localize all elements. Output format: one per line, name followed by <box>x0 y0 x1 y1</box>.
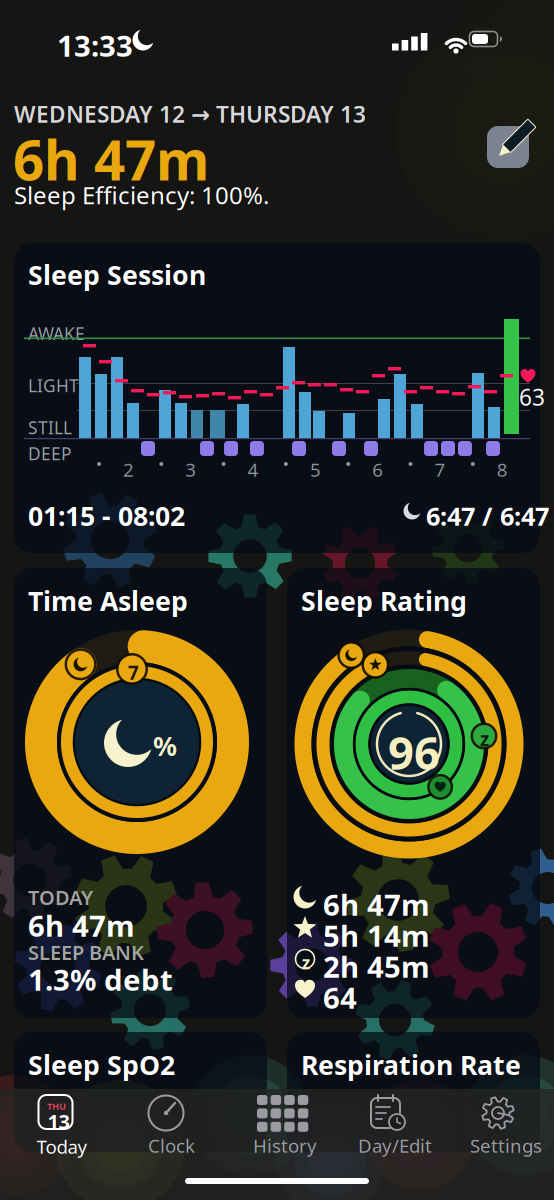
staticText: 6h 47m <box>28 906 135 945</box>
staticText: Clock <box>148 1133 195 1158</box>
staticText: DEEP <box>28 442 71 465</box>
staticText: 01:15 - 08:02 <box>28 498 185 533</box>
staticText: 5h 14m <box>323 916 430 955</box>
staticText: 4 <box>248 457 259 482</box>
staticText: 13:33 <box>57 26 133 65</box>
button[interactable]: Day/Edit <box>338 1092 438 1152</box>
staticText: 7 <box>128 660 139 685</box>
staticText: SLEEP BANK <box>28 939 144 966</box>
button[interactable]: Respiration Rate <box>287 1032 540 1152</box>
button[interactable]: Sleep Rating <box>287 568 540 1018</box>
button[interactable] <box>483 112 539 172</box>
staticText: 2h 45m <box>323 947 430 986</box>
button[interactable]: Sleep SpO2 <box>14 1032 267 1152</box>
button[interactable]: Sleep Session <box>14 243 540 553</box>
staticText: Today <box>36 1134 87 1159</box>
staticText: Sleep Efficiency: 100%. <box>14 179 269 211</box>
staticText: WEDNESDAY 12 → THURSDAY 13 <box>14 99 366 129</box>
button[interactable]: Settings <box>448 1092 548 1152</box>
staticText: 64 <box>323 978 357 1017</box>
button[interactable]: Clock <box>116 1092 216 1152</box>
staticText: 13 <box>47 1108 69 1135</box>
staticText: z <box>302 951 311 974</box>
staticText: Sleep SpO2 <box>28 1047 175 1082</box>
staticText: STILL <box>28 416 72 439</box>
staticText: 1.3% debt <box>28 960 173 999</box>
staticText: AWAKE <box>28 322 85 345</box>
staticText: 3 <box>185 457 196 482</box>
staticText: % <box>153 728 177 763</box>
staticText: 63 <box>519 382 545 412</box>
staticText: LIGHT <box>28 374 79 397</box>
staticText: 6 <box>372 457 383 482</box>
staticText: 6h 47m <box>323 885 430 924</box>
staticText: 6:47 / 6:47 <box>426 499 549 533</box>
staticText: 96 <box>388 722 440 782</box>
staticText: 5 <box>310 457 321 482</box>
staticText: 2 <box>123 457 134 482</box>
staticText: Sleep Rating <box>301 583 467 618</box>
staticText: Time Asleep <box>28 583 188 618</box>
staticText: Settings <box>470 1133 542 1158</box>
staticText: 8 <box>497 457 508 482</box>
button[interactable]: Time Asleep <box>14 568 267 1018</box>
staticText: Day/Edit <box>358 1133 432 1158</box>
staticText: Respiration Rate <box>301 1047 521 1082</box>
staticText: TODAY <box>28 884 93 911</box>
staticText: THU <box>47 1100 66 1112</box>
staticText: 6h 47m <box>13 123 209 196</box>
button[interactable]: History <box>227 1092 327 1152</box>
staticText: z <box>480 726 489 751</box>
button[interactable]: THU <box>5 1092 105 1152</box>
staticText: 7 <box>434 457 445 482</box>
staticText: History <box>253 1133 317 1158</box>
staticText: Sleep Session <box>28 257 206 292</box>
